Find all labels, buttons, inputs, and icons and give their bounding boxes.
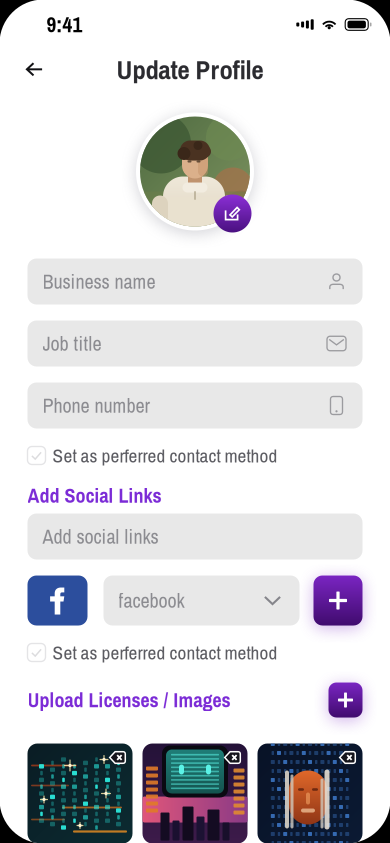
button[interactable]: Set as perferred contact method	[27, 642, 362, 662]
button[interactable]: Remove image	[338, 750, 356, 764]
button[interactable]: Add social link	[313, 575, 362, 625]
staticText: Set as perferred contact method	[52, 640, 277, 665]
button[interactable]: Job title	[27, 320, 362, 366]
staticText: Add social links	[42, 523, 158, 550]
button[interactable]: Phone number	[27, 382, 362, 428]
staticText: Upload Licenses / Images	[27, 686, 230, 713]
staticText: 9:41	[46, 10, 82, 39]
staticText: Set as perferred contact method	[52, 443, 277, 468]
button[interactable]: Add social links	[27, 513, 362, 559]
button[interactable]: Add image	[328, 682, 362, 717]
staticText: facebook	[118, 587, 184, 614]
button[interactable]: Back	[18, 57, 50, 81]
staticText: Add Social Links	[27, 482, 161, 509]
button[interactable]: Remove image	[108, 750, 126, 764]
staticText: Phone number	[42, 392, 149, 419]
staticText: Job title	[42, 330, 101, 357]
button[interactable]: Facebook	[27, 575, 87, 625]
staticText: Update Profile	[116, 51, 263, 87]
button[interactable]: Business name	[27, 258, 362, 304]
staticText: Business name	[42, 268, 155, 295]
button[interactable]: facebook	[103, 575, 299, 625]
button[interactable]: Set as perferred contact method	[27, 445, 362, 465]
button[interactable]: Remove image	[223, 750, 241, 764]
